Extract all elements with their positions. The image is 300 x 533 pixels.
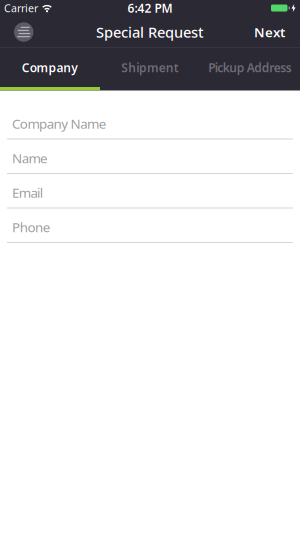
- button[interactable]: Company Name text field: [0, 109, 300, 139]
- button[interactable]: Shipment: [100, 48, 200, 87]
- button[interactable]: Name text field: [0, 144, 300, 174]
- staticText: Company Name: [12, 115, 107, 132]
- staticText: Name: [12, 149, 48, 167]
- staticText: Shipment: [121, 59, 179, 75]
- button[interactable]: Company: [0, 48, 100, 87]
- staticText: Special Request: [96, 22, 204, 42]
- button[interactable]: Menu: [14, 22, 33, 42]
- staticText: Pickup Address: [208, 59, 292, 75]
- staticText: Carrier: [4, 1, 38, 15]
- button[interactable]: Pickup Address: [200, 48, 300, 87]
- staticText: Phone: [12, 218, 51, 236]
- staticText: Next: [254, 23, 285, 41]
- staticText: 6:42 PM: [127, 0, 172, 16]
- button[interactable]: Next: [254, 15, 285, 49]
- staticText: Company: [22, 59, 78, 75]
- button[interactable]: Email text field: [0, 178, 300, 208]
- button[interactable]: Phone text field: [0, 213, 300, 243]
- staticText: Email: [12, 184, 43, 201]
